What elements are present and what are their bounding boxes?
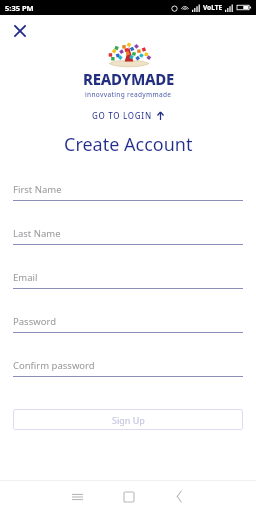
staticText: innovvating readymmade (85, 90, 172, 99)
staticText: Password (13, 315, 56, 328)
staticText: GO TO LOGIN (92, 110, 152, 121)
staticText: 5:35 PM (5, 3, 34, 13)
staticText: Last Name (13, 227, 61, 240)
button[interactable]: GO TO LOGIN (86, 107, 171, 124)
staticText: READYMADE (83, 69, 174, 89)
staticText: VoLTE (203, 3, 223, 12)
staticText: Email (13, 271, 38, 284)
button[interactable]: Home (103, 481, 154, 512)
button[interactable]: Sign Up (13, 409, 243, 430)
staticText: Confirm password (13, 359, 95, 372)
staticText: Sign Up (112, 414, 145, 426)
button[interactable]: Recents (52, 481, 103, 512)
button[interactable]: Close (9, 20, 31, 42)
button[interactable]: Back (154, 481, 205, 512)
staticText: First Name (13, 183, 62, 196)
staticText: Create Account (64, 132, 193, 157)
